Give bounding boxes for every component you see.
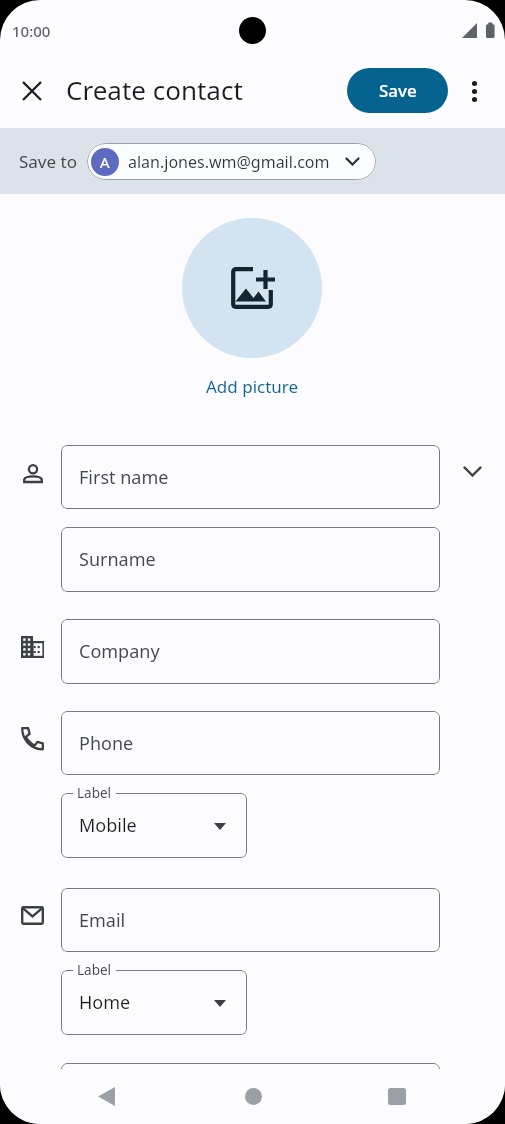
button[interactable]: Add picture (182, 218, 322, 358)
button[interactable]: Mobile (61, 793, 247, 858)
button[interactable]: Save (347, 68, 448, 113)
staticText: Save to (19, 150, 77, 173)
button[interactable]: Expand name (455, 454, 489, 488)
button[interactable]: A (87, 143, 376, 180)
staticText: First name (79, 465, 169, 490)
button[interactable]: Back (82, 1072, 130, 1120)
button[interactable]: Email (61, 888, 440, 952)
staticText: Home (79, 990, 131, 1015)
button[interactable]: Home (61, 970, 247, 1035)
staticText: Mobile (79, 813, 137, 838)
staticText: Label (77, 961, 112, 979)
staticText: Save (379, 79, 417, 102)
button[interactable]: First name (61, 445, 440, 509)
button[interactable]: Add picture (206, 375, 299, 398)
staticText: Email (79, 908, 126, 933)
button[interactable]: Phone (61, 711, 440, 775)
staticText: Create contact (66, 72, 243, 107)
button[interactable]: Company (61, 619, 440, 684)
staticText: alan.jones.wm@gmail.com (128, 151, 330, 173)
button[interactable]: Close (8, 67, 56, 115)
staticText: 10:00 (12, 21, 51, 41)
staticText: Company (79, 639, 160, 664)
button[interactable]: Recents (373, 1072, 421, 1120)
staticText: Phone (79, 731, 134, 756)
staticText: Surname (79, 547, 156, 572)
button[interactable]: Surname (61, 527, 440, 592)
button[interactable]: More options (450, 67, 498, 115)
staticText: A (100, 152, 110, 172)
staticText: Label (77, 784, 112, 802)
button[interactable]: Home (229, 1072, 277, 1120)
